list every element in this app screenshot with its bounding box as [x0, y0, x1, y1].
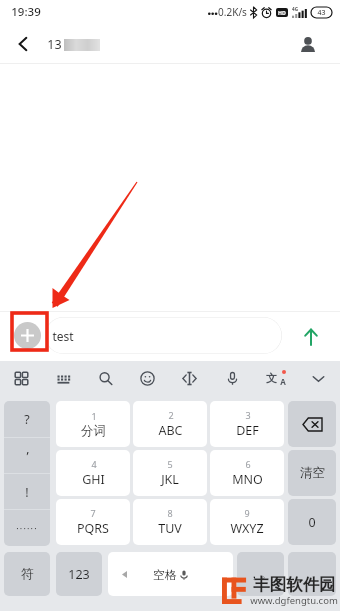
button[interactable]: Add attachment [14, 322, 41, 349]
button[interactable]: Back [5, 26, 41, 62]
button[interactable]: 5 [133, 450, 207, 496]
button[interactable]: Apostrophe [4, 438, 50, 474]
staticText: 43 [317, 8, 326, 18]
staticText: test [52, 328, 74, 344]
staticText: 3 [245, 409, 251, 421]
button[interactable]: Zero [288, 499, 336, 545]
button[interactable]: Question mark [4, 401, 50, 438]
button[interactable]: 6 [210, 450, 284, 496]
button[interactable]: 空格 [108, 552, 233, 596]
button[interactable]: 7 [56, 499, 130, 545]
staticText: 文 [266, 371, 277, 385]
button[interactable]: 3 [210, 401, 284, 447]
staticText: 丰图软件园 [253, 574, 336, 595]
staticText: 0.2K/s [218, 5, 247, 19]
staticText: WXYZ [230, 520, 264, 537]
staticText: 5 [167, 458, 173, 470]
staticText: ······ [16, 522, 38, 534]
button[interactable]: 4 [56, 450, 130, 496]
staticText: GHI [82, 471, 105, 488]
staticText: ! [25, 484, 29, 501]
button[interactable]: Punctuation [237, 552, 284, 596]
button[interactable]: Enter [288, 552, 336, 596]
staticText: 0 [308, 514, 316, 531]
staticText: 4G [292, 6, 298, 12]
button[interactable]: Emoji [126, 361, 168, 396]
staticText: 1 [91, 410, 97, 422]
button[interactable]: Ellipsis [4, 510, 50, 546]
staticText: A [280, 376, 286, 387]
staticText: ’ [26, 448, 29, 465]
button[interactable]: 9 [210, 499, 284, 545]
button[interactable]: Clear [288, 450, 336, 496]
staticText: ，。 [248, 566, 273, 582]
button[interactable]: 2 [133, 401, 207, 447]
button[interactable]: Move cursor [168, 361, 211, 396]
staticText: 符 [21, 566, 34, 582]
staticText: 6 [245, 458, 251, 470]
staticText: ? [24, 411, 30, 428]
staticText: DEF [236, 422, 259, 439]
staticText: 2 [168, 409, 174, 421]
staticText: 19:39 [11, 4, 41, 20]
button[interactable]: Backspace [288, 401, 336, 447]
staticText: www.dgfengtu.com [250, 594, 338, 607]
button[interactable]: Translate [254, 361, 297, 396]
staticText: PQRS [77, 520, 109, 537]
button[interactable]: Hide keyboard [297, 361, 340, 396]
staticText: 清空 [300, 465, 325, 481]
button[interactable]: test [45, 317, 282, 354]
staticText: ABC [158, 422, 183, 439]
staticText: 4 [91, 458, 97, 470]
staticText: 13 [47, 36, 62, 53]
staticText: 分词 [81, 423, 106, 439]
button[interactable]: Voice input [211, 361, 254, 396]
staticText: HD [278, 9, 286, 16]
button[interactable]: 符 [4, 552, 50, 596]
button[interactable]: Send [296, 321, 326, 351]
button[interactable]: 1 [56, 401, 130, 447]
button[interactable]: Apps [0, 361, 42, 396]
button[interactable]: Keyboard layout [42, 361, 84, 396]
staticText: MNO [232, 471, 263, 488]
staticText: 9 [244, 507, 250, 519]
staticText: TUV [158, 520, 182, 537]
staticText: 123 [68, 566, 90, 583]
staticText: JKL [161, 471, 179, 488]
button[interactable]: 123 [56, 552, 102, 596]
staticText: 7 [90, 507, 96, 519]
button[interactable]: 8 [133, 499, 207, 545]
staticText: 8 [167, 507, 173, 519]
button[interactable]: Exclamation mark [4, 474, 50, 510]
staticText: 空格 [153, 567, 177, 582]
button[interactable]: Contact info [292, 28, 324, 60]
button[interactable]: Search [84, 361, 126, 396]
